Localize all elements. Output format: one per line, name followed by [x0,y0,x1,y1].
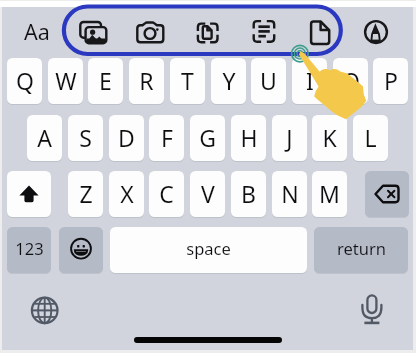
button[interactable]: Backspace [365,171,409,217]
staticText: P [384,65,398,96]
button[interactable]: return [314,227,408,273]
button[interactable]: Scan documents [187,17,227,47]
button[interactable]: Photo library [73,17,113,47]
button[interactable]: Z [68,171,103,217]
staticText: C [159,178,174,209]
staticText: S [79,122,92,153]
button[interactable]: D [109,115,144,161]
staticText: I [306,65,314,96]
button[interactable]: R [129,58,164,104]
button[interactable]: Next keyboard [25,290,65,330]
staticText: M [319,178,340,209]
button[interactable]: U [251,58,286,104]
button[interactable]: V [190,171,225,217]
staticText: T [181,65,194,96]
button[interactable]: Markup [356,17,396,47]
button[interactable]: Shift [7,171,51,217]
staticText: H [240,122,258,153]
button[interactable]: L [353,115,388,161]
staticText: O [342,65,360,96]
button[interactable]: M [312,171,347,217]
button[interactable]: I [292,58,327,104]
button[interactable]: space [110,227,307,273]
staticText: D [118,122,135,153]
button[interactable]: X [109,171,144,217]
staticText: R [139,65,154,96]
staticText: K [322,122,337,153]
button[interactable]: F [149,115,184,161]
button[interactable]: O [333,58,368,104]
button[interactable]: J [272,115,307,161]
staticText: A [37,122,52,153]
button[interactable]: Y [211,58,246,104]
button[interactable]: Dictate [352,288,392,330]
staticText: J [286,122,293,153]
staticText: B [241,178,256,209]
button[interactable]: Scan text [244,17,284,47]
staticText: Aa [24,17,50,46]
button[interactable]: Emoji [59,227,103,273]
button[interactable]: 123 [7,227,51,273]
button[interactable]: B [231,171,266,217]
staticText: G [199,122,216,153]
staticText: N [281,178,299,209]
staticText: F [161,122,173,153]
staticText: Z [79,178,93,209]
staticText: X [120,178,134,209]
button[interactable]: N [272,171,307,217]
button[interactable]: P [373,58,408,104]
button[interactable]: K [312,115,347,161]
button[interactable]: Aa [19,17,55,47]
staticText: 123 [15,237,44,259]
staticText: Q [16,65,34,96]
button[interactable]: T [170,58,205,104]
button[interactable]: A [27,115,62,161]
staticText: W [55,65,77,96]
staticText: Y [222,65,236,96]
staticText: V [201,178,215,209]
staticText: E [99,65,112,96]
button[interactable]: S [68,115,103,161]
button[interactable]: Q [7,58,42,104]
button[interactable]: Take photo [130,17,170,47]
button[interactable]: W [48,58,83,104]
button[interactable]: H [231,115,266,161]
button[interactable]: Add document [300,17,340,47]
button[interactable]: G [190,115,225,161]
staticText: U [260,65,277,96]
staticText: L [364,122,377,153]
button[interactable]: E [88,58,123,104]
staticText: return [337,237,386,259]
button[interactable]: C [149,171,184,217]
staticText: space [186,237,231,259]
